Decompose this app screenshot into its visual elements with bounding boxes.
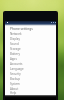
staticText: Display	[10, 37, 20, 41]
button[interactable]: System	[5, 81, 56, 86]
staticText: Storage	[10, 47, 21, 51]
staticText: Sound	[10, 42, 19, 46]
button[interactable]: Accounts	[5, 61, 56, 66]
staticText: Network	[10, 32, 22, 36]
button[interactable]: Sound	[5, 41, 56, 46]
staticText: System	[10, 82, 20, 86]
staticText: About	[10, 87, 19, 91]
staticText: Backup	[10, 77, 20, 81]
button[interactable]: Phone settings	[5, 27, 56, 31]
staticText: Battery	[10, 52, 20, 56]
staticText: Accounts	[10, 62, 23, 66]
staticText: Security	[10, 72, 21, 76]
button[interactable]: Help	[5, 91, 56, 95]
button[interactable]: Storage	[5, 46, 56, 51]
button[interactable]: Display	[5, 36, 56, 41]
button[interactable]: Backup	[5, 76, 56, 81]
staticText: Help	[10, 91, 17, 95]
button[interactable]: Battery	[5, 51, 56, 56]
button[interactable]: Apps	[5, 56, 56, 61]
button[interactable]: Language	[5, 66, 56, 71]
button[interactable]: Security	[5, 71, 56, 76]
staticText: Phone settings	[10, 27, 33, 31]
staticText: Apps	[10, 57, 17, 61]
button[interactable]: About	[5, 86, 56, 91]
button[interactable]: Network	[5, 31, 56, 36]
staticText: Language	[10, 67, 24, 71]
